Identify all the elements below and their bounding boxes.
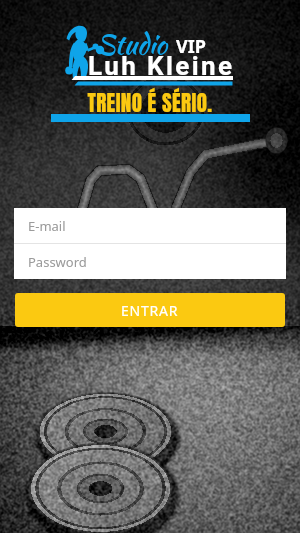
button[interactable]: E-mail: [14, 208, 286, 243]
staticText: TREINO É SÉRIO.: [0, 87, 300, 119]
button[interactable]: ENTRAR: [15, 293, 285, 327]
button[interactable]: Password: [14, 244, 286, 279]
staticText: Luh Kleine: [88, 51, 235, 81]
staticText: VIP: [176, 34, 206, 59]
staticText: ENTRAR: [121, 301, 179, 320]
staticText: Studio: [96, 25, 167, 64]
staticText: E-mail: [28, 217, 66, 235]
staticText: Password: [28, 253, 87, 271]
